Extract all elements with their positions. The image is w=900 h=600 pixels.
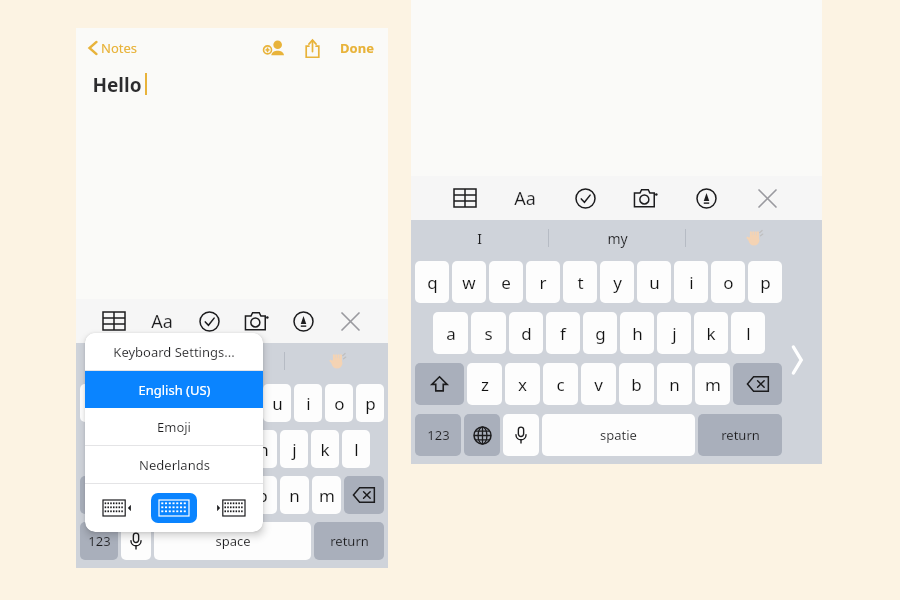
button[interactable]: Backspace [733, 363, 782, 405]
button[interactable]: I [76, 343, 180, 379]
button[interactable]: j [280, 430, 308, 468]
button[interactable]: r [526, 261, 560, 303]
button[interactable]: n [657, 363, 692, 405]
button[interactable]: h [249, 430, 277, 468]
button[interactable]: 123 [415, 414, 461, 456]
button[interactable]: d [509, 312, 543, 354]
button[interactable]: y [600, 261, 634, 303]
button[interactable]: Nederlands [85, 446, 263, 483]
button[interactable]: p [356, 384, 384, 422]
button[interactable]: l [342, 430, 370, 468]
button[interactable]: e [489, 261, 523, 303]
button[interactable]: Switch keyboard [464, 414, 500, 456]
button[interactable]: return [314, 522, 384, 560]
button[interactable]: Share [298, 34, 326, 62]
staticText: Keyboard Settings... [113, 343, 235, 361]
button[interactable]: z [467, 363, 502, 405]
button[interactable]: Shift [80, 476, 119, 514]
button[interactable]: Table [90, 301, 138, 341]
button[interactable]: f [187, 430, 215, 468]
button[interactable]: g [583, 312, 617, 354]
button[interactable]: Markup [676, 178, 737, 218]
button[interactable]: Dictate [503, 414, 539, 456]
button[interactable]: i [294, 384, 322, 422]
button[interactable]: z [122, 476, 150, 514]
button[interactable]: a [94, 430, 122, 468]
button[interactable]: w [110, 384, 137, 422]
button[interactable]: Split left keyboard [95, 493, 141, 523]
button[interactable]: q [415, 261, 449, 303]
button[interactable]: w [452, 261, 486, 303]
button[interactable]: p [748, 261, 782, 303]
button[interactable]: 123 [80, 522, 118, 560]
button[interactable]: m [695, 363, 730, 405]
staticText: x [163, 484, 172, 507]
button[interactable]: Next [782, 345, 812, 375]
button[interactable]: Table [435, 178, 495, 218]
button[interactable]: h [620, 312, 654, 354]
button[interactable]: Split right keyboard [207, 493, 253, 523]
button[interactable]: Markup [280, 301, 327, 341]
button[interactable]: s [125, 430, 153, 468]
button[interactable]: s [471, 312, 506, 354]
button[interactable]: u [263, 384, 291, 422]
button[interactable]: English (US) [85, 371, 263, 408]
button[interactable]: e [140, 384, 167, 422]
button[interactable]: u [637, 261, 671, 303]
button[interactable]: f [546, 312, 580, 354]
button[interactable]: t [563, 261, 597, 303]
button[interactable]: d [156, 430, 184, 468]
staticText: r [180, 392, 188, 415]
button[interactable]: Dictate [121, 522, 151, 560]
button[interactable]: j [657, 312, 691, 354]
button[interactable]: my [181, 343, 284, 379]
button[interactable]: spatie [542, 414, 695, 456]
button[interactable]: Checklist [555, 178, 615, 218]
button[interactable]: I [411, 220, 548, 256]
button[interactable]: c [184, 476, 213, 514]
button[interactable]: space [154, 522, 311, 560]
button[interactable]: i [674, 261, 708, 303]
button[interactable]: q [80, 384, 107, 422]
button[interactable]: return [698, 414, 782, 456]
button[interactable]: o [325, 384, 353, 422]
button[interactable]: b [619, 363, 654, 405]
button[interactable]: y [232, 384, 260, 422]
button[interactable]: v [581, 363, 616, 405]
button[interactable]: Format [495, 178, 555, 218]
button[interactable]: Camera [615, 178, 676, 218]
button[interactable]: k [694, 312, 728, 354]
button[interactable] [686, 220, 822, 256]
button[interactable]: o [711, 261, 745, 303]
staticText: b [257, 484, 268, 507]
button[interactable]: x [505, 363, 540, 405]
button[interactable] [285, 343, 388, 379]
button[interactable]: b [248, 476, 277, 514]
button[interactable]: Emoji [85, 408, 263, 445]
button[interactable]: m [312, 476, 341, 514]
button[interactable]: Camera [233, 301, 280, 341]
button[interactable]: t [201, 384, 229, 422]
button[interactable]: Format [138, 301, 186, 341]
button[interactable]: Done [336, 35, 378, 61]
button[interactable]: x [153, 476, 181, 514]
button[interactable]: Shift [415, 363, 464, 405]
button[interactable]: Keyboard Settings... [85, 333, 263, 370]
button[interactable]: k [311, 430, 339, 468]
button[interactable]: c [543, 363, 578, 405]
button[interactable]: r [170, 384, 198, 422]
button[interactable]: n [280, 476, 309, 514]
button[interactable]: g [218, 430, 246, 468]
button[interactable]: Notes [86, 35, 139, 61]
button[interactable]: Full keyboard [151, 493, 197, 523]
button[interactable]: Close [737, 178, 798, 218]
button[interactable]: l [731, 312, 765, 354]
button[interactable]: my [549, 220, 685, 256]
button[interactable]: v [216, 476, 245, 514]
staticText: y [242, 392, 251, 415]
button[interactable]: Close [327, 301, 374, 341]
button[interactable]: Backspace [344, 476, 384, 514]
button[interactable]: Checklist [186, 301, 233, 341]
button[interactable]: a [433, 312, 468, 354]
button[interactable]: Add people [260, 33, 290, 63]
